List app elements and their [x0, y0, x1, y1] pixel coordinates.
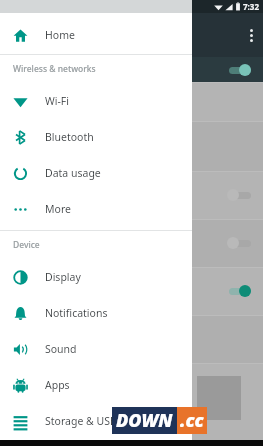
staticText: Notifications	[45, 306, 108, 320]
other: Home	[13, 28, 28, 43]
staticText: Home	[45, 28, 75, 42]
other: Wi-Fi	[13, 94, 28, 109]
staticText: Storage & USB	[45, 414, 117, 428]
staticText: 7:32	[243, 1, 259, 12]
button[interactable]: Toggle off	[226, 235, 256, 251]
button[interactable]: Apps	[0, 367, 192, 403]
other: Sound	[13, 342, 28, 357]
button[interactable]: Toggle on	[226, 62, 256, 78]
button[interactable]: Bluetooth	[0, 119, 192, 155]
button[interactable]: More options	[242, 26, 260, 44]
button[interactable]: Toggle off	[226, 187, 256, 203]
button[interactable]: Home	[0, 17, 192, 53]
button[interactable]: Storage and USB	[0, 403, 192, 439]
staticText: Bluetooth	[45, 130, 94, 144]
button[interactable]: Display	[0, 259, 192, 295]
staticText: Sound	[45, 342, 77, 356]
other: Storage and USB	[13, 414, 28, 429]
staticText: Device	[13, 239, 40, 251]
button[interactable]: Data usage	[0, 155, 192, 191]
button[interactable]: More	[0, 191, 192, 227]
button[interactable]: Sound	[0, 331, 192, 367]
staticText: Wi-Fi	[45, 94, 70, 108]
staticText: DOWN	[116, 408, 173, 433]
staticText: More	[45, 202, 71, 216]
other: More	[13, 202, 28, 217]
button[interactable]: Notifications	[0, 295, 192, 331]
button[interactable]: Wi-Fi	[0, 83, 192, 119]
other: Data usage	[13, 166, 28, 181]
other: Apps	[13, 378, 28, 393]
button[interactable]: Toggle on	[226, 283, 256, 299]
staticText: Display	[45, 270, 81, 284]
staticText: Wireless & networks	[13, 63, 96, 75]
other: Notifications	[13, 306, 28, 321]
staticText: .cc	[180, 408, 204, 433]
staticText: Apps	[45, 378, 70, 392]
other: Bluetooth	[13, 130, 28, 145]
other: Display	[13, 270, 28, 285]
staticText: Data usage	[45, 166, 101, 180]
